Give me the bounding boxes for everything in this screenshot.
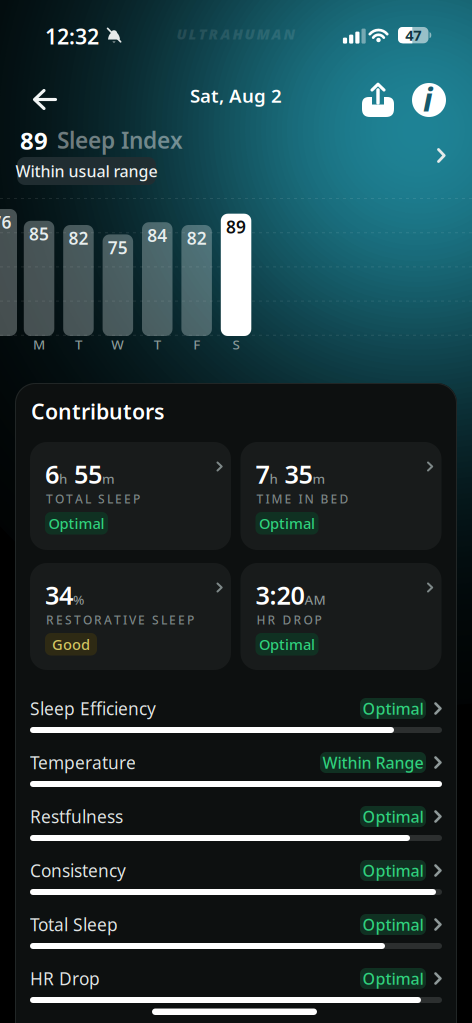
staticText: Contributors [31, 397, 165, 425]
staticText: 12:32 [45, 22, 99, 50]
button[interactable]: Consistency [15, 848, 457, 902]
staticText: i [423, 78, 433, 120]
staticText: F [193, 335, 200, 353]
staticText: Restfulness [30, 805, 123, 828]
staticText: Total Sleep [30, 913, 118, 936]
button[interactable]: Restfulness [15, 794, 457, 848]
staticText: H R D R O P [256, 612, 321, 628]
button[interactable]: Share [362, 83, 394, 117]
staticText: Consistency [30, 859, 126, 882]
button[interactable]: 34 [30, 563, 231, 670]
staticText: 7 [255, 457, 269, 491]
staticText: Within usual range [15, 160, 157, 182]
staticText: 3:20 [255, 578, 304, 612]
staticText: % [73, 591, 84, 608]
staticText: 84 [147, 224, 167, 247]
staticText: HR Drop [30, 967, 100, 990]
staticText: Sleep Index [57, 125, 183, 155]
staticText: Optimal [362, 968, 423, 989]
staticText: h [59, 470, 67, 487]
staticText: S [233, 335, 240, 353]
button[interactable]: HR Drop [15, 956, 457, 1010]
button[interactable]: Total Sleep [15, 902, 457, 956]
staticText: 76 [0, 210, 11, 233]
staticText: 85 [29, 222, 49, 245]
staticText: AM [304, 591, 325, 608]
staticText: Optimal [362, 914, 423, 935]
staticText: 55 [67, 457, 102, 491]
staticText: 82 [187, 226, 207, 249]
button[interactable]: Temperature [15, 740, 457, 794]
staticText: Optimal [259, 513, 315, 533]
staticText: Temperature [30, 751, 136, 774]
button[interactable]: 7 [240, 442, 441, 550]
staticText: 47 [405, 25, 421, 45]
staticText: T O T A L S L E E P [46, 491, 140, 507]
staticText: T I M E I N B E D [256, 491, 348, 507]
staticText: T [75, 335, 82, 353]
staticText: 89 [226, 215, 246, 238]
staticText: Optimal [362, 806, 423, 827]
button[interactable]: 6 [30, 442, 231, 550]
staticText: Optimal [362, 698, 423, 719]
staticText: Sat, Aug 2 [190, 83, 282, 108]
staticText: 75 [108, 236, 128, 259]
staticText: Optimal [259, 634, 315, 654]
staticText: Sleep Efficiency [30, 697, 156, 720]
button[interactable]: 3:20 [240, 563, 441, 670]
staticText: m [312, 470, 325, 487]
staticText: m [102, 470, 115, 487]
button[interactable]: Back [23, 79, 67, 120]
staticText: M [33, 335, 45, 353]
staticText: W [111, 335, 124, 353]
staticText: 82 [68, 226, 88, 249]
staticText: Optimal [362, 860, 423, 881]
staticText: 6 [45, 457, 59, 491]
staticText: Within Range [322, 752, 423, 773]
staticText: 34 [45, 578, 73, 612]
button[interactable]: Sleep Efficiency [15, 686, 457, 740]
staticText: R E S T O R A T I V E S L E E P [46, 612, 194, 628]
staticText: h [269, 470, 277, 487]
staticText: U L T R A H U M A N [176, 24, 295, 43]
staticText: 35 [277, 457, 312, 491]
staticText: Good [52, 634, 90, 654]
staticText: 89 [20, 124, 48, 156]
staticText: Optimal [48, 513, 104, 533]
button[interactable]: 89 [0, 128, 472, 190]
staticText: T [154, 335, 161, 353]
button[interactable]: Info [412, 83, 446, 117]
